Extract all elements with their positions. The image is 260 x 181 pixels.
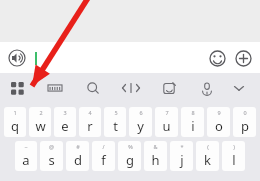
staticText: d xyxy=(74,151,82,169)
staticText: q xyxy=(11,117,19,135)
button[interactable]: Emoji xyxy=(206,47,228,69)
staticText: 1 xyxy=(13,109,17,116)
button[interactable]: 1 xyxy=(4,107,26,137)
button[interactable]: 3 xyxy=(54,107,76,137)
staticText: * xyxy=(180,143,184,150)
button[interactable]: 7 xyxy=(155,107,178,137)
staticText: 9 xyxy=(217,109,221,116)
staticText: l xyxy=(232,151,236,169)
button[interactable]: 2 xyxy=(29,107,51,137)
button[interactable]: Sticker grid xyxy=(6,77,28,99)
button[interactable]: ( xyxy=(196,141,219,171)
button[interactable]: Hide keyboard xyxy=(228,77,250,99)
button[interactable]: @ xyxy=(40,141,63,171)
button[interactable]: 8 xyxy=(181,107,204,137)
staticText: s xyxy=(48,151,55,169)
staticText: f xyxy=(101,151,106,169)
staticText: w xyxy=(35,117,46,135)
button[interactable] xyxy=(32,46,200,70)
staticText: % xyxy=(128,143,133,150)
button[interactable]: 6 xyxy=(129,107,152,137)
staticText: j xyxy=(180,151,184,169)
staticText: 7 xyxy=(165,109,169,116)
staticText: ~ xyxy=(24,143,28,150)
staticText: 2 xyxy=(39,109,43,116)
button[interactable]: & xyxy=(144,141,167,171)
staticText: 4 xyxy=(88,109,92,116)
button[interactable]: Search xyxy=(82,77,104,99)
staticText: 8 xyxy=(191,109,195,116)
button[interactable]: % xyxy=(118,141,141,171)
button[interactable]: / xyxy=(92,141,115,171)
button[interactable]: 0 xyxy=(233,107,256,137)
staticText: o xyxy=(215,117,223,135)
staticText: 3 xyxy=(63,109,67,116)
button[interactable]: 9 xyxy=(207,107,230,137)
button[interactable]: Translate xyxy=(120,77,142,99)
staticText: a xyxy=(22,151,30,169)
staticText: g xyxy=(126,151,134,169)
button[interactable]: ) xyxy=(222,141,245,171)
staticText: 0 xyxy=(243,109,247,116)
staticText: # xyxy=(76,143,80,150)
button[interactable]: ~ xyxy=(15,141,37,171)
button[interactable]: # xyxy=(66,141,89,171)
button[interactable]: 4 xyxy=(79,107,101,137)
staticText: y xyxy=(137,117,144,135)
button[interactable]: Keyboard xyxy=(44,77,66,99)
staticText: / xyxy=(102,143,105,150)
staticText: @ xyxy=(49,143,54,150)
button[interactable]: Add attachment xyxy=(232,47,254,69)
staticText: t xyxy=(113,117,118,135)
button[interactable]: Clipboard xyxy=(158,77,180,99)
staticText: ) xyxy=(233,143,235,150)
staticText: 5 xyxy=(114,109,118,116)
staticText: 6 xyxy=(139,109,143,116)
staticText: r xyxy=(87,117,93,135)
staticText: ( xyxy=(207,143,209,150)
button[interactable]: Voice message xyxy=(6,47,27,68)
button[interactable]: Voice input xyxy=(196,77,218,99)
staticText: i xyxy=(191,117,195,135)
button[interactable]: * xyxy=(170,141,193,171)
staticText: p xyxy=(241,117,249,135)
staticText: e xyxy=(61,117,69,135)
staticText: u xyxy=(162,117,171,135)
staticText: k xyxy=(204,151,211,169)
staticText: h xyxy=(151,151,160,169)
button[interactable]: 5 xyxy=(104,107,126,137)
staticText: & xyxy=(153,143,158,150)
